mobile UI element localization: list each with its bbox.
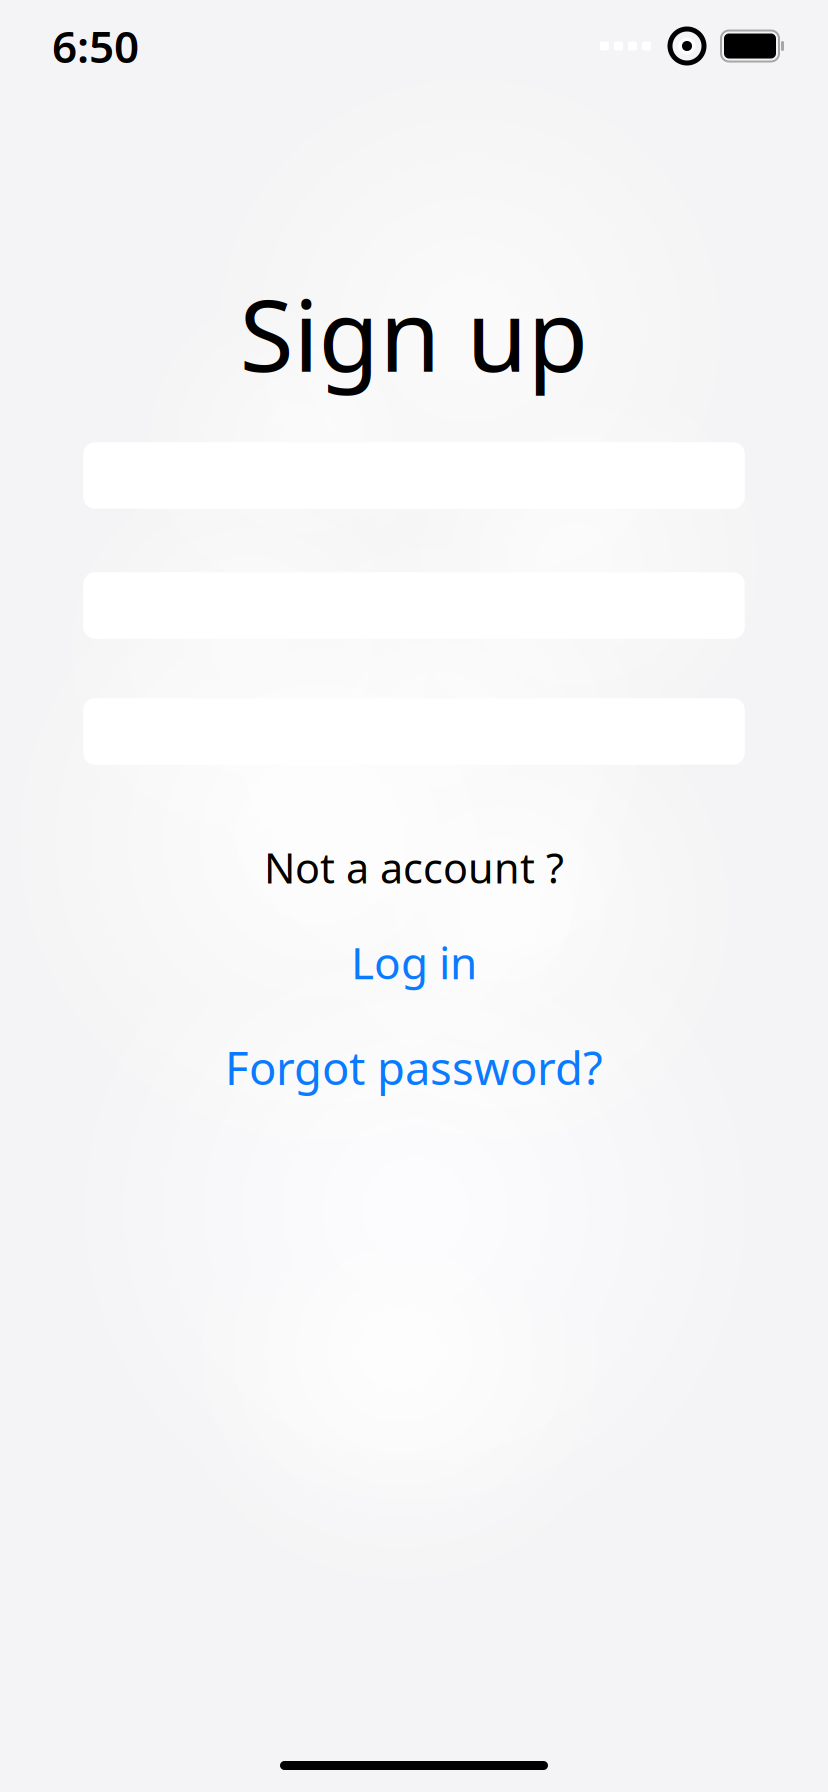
button[interactable]: Forgot password? [199,1029,629,1105]
staticText: Forgot password? [225,1037,603,1097]
staticText: Sign up [239,268,588,399]
staticText: Not a account ? [264,840,564,895]
button[interactable]: Log in [325,925,503,999]
staticText: 6:50 [52,17,139,75]
staticText: Log in [351,933,477,991]
